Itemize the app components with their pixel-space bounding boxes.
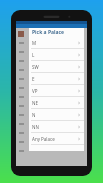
staticText: E (32, 76, 77, 82)
staticText: NN (32, 124, 77, 130)
staticText: L (32, 52, 77, 58)
button[interactable]: NE (29, 97, 84, 108)
staticText: Any Palace (32, 136, 77, 142)
button[interactable]: Any Palace (29, 133, 84, 144)
staticText: NE (32, 100, 77, 106)
staticText: SW (32, 64, 77, 70)
button[interactable]: M (29, 37, 84, 48)
button[interactable]: SW (29, 61, 84, 72)
staticText: M (32, 40, 77, 46)
button[interactable]: NN (29, 121, 84, 132)
button[interactable]: VP (29, 85, 84, 96)
staticText: VP (32, 88, 77, 94)
button[interactable]: E (29, 73, 84, 84)
staticText: N (32, 112, 77, 118)
button[interactable]: N (29, 109, 84, 120)
staticText: Pick a Palace (32, 29, 65, 36)
button[interactable]: L (29, 49, 84, 60)
